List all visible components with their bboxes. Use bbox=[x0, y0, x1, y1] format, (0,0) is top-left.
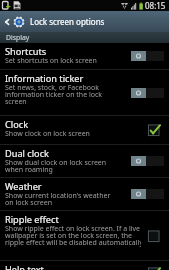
button[interactable]: Unchecked bbox=[144, 229, 164, 243]
staticText: Help text bbox=[5, 263, 44, 270]
button[interactable]: Toggle bbox=[131, 51, 164, 61]
button[interactable]: Navigate up bbox=[0, 11, 13, 32]
button[interactable]: Toggle bbox=[131, 88, 164, 98]
staticText: Dual clock bbox=[5, 147, 49, 160]
button[interactable]: Help text bbox=[0, 261, 169, 270]
staticText: Shortcuts bbox=[5, 45, 47, 58]
staticText: Lock screen options bbox=[30, 16, 105, 27]
button[interactable]: Ripple effect bbox=[0, 211, 169, 260]
button[interactable]: Information ticker bbox=[0, 70, 169, 115]
button[interactable]: Weather bbox=[0, 178, 169, 210]
staticText: Set news, stock, or Facebook information… bbox=[5, 83, 103, 106]
staticText: Show ripple effect on lock screen. If a … bbox=[5, 224, 141, 247]
button[interactable]: Toggle bbox=[131, 189, 164, 199]
staticText: Information ticker bbox=[5, 72, 84, 85]
button[interactable]: Dual clock bbox=[0, 145, 169, 177]
button[interactable]: Toggle bbox=[131, 156, 164, 166]
staticText: Clock bbox=[5, 118, 29, 131]
staticText: 08:15 bbox=[145, 0, 166, 11]
button[interactable]: Checked bbox=[144, 267, 164, 270]
staticText: Show current location's weather on lock … bbox=[5, 191, 111, 207]
staticText: Display bbox=[6, 33, 30, 42]
staticText: Show dual clock on lock screen when roam… bbox=[5, 158, 107, 174]
button[interactable]: Checked bbox=[144, 123, 164, 137]
button[interactable]: Clock bbox=[0, 116, 169, 144]
staticText: Show clock on lock screen bbox=[5, 129, 90, 139]
button[interactable]: Shortcuts bbox=[0, 43, 169, 69]
staticText: Set shortcuts on lock screen bbox=[5, 56, 97, 66]
staticText: Ripple effect bbox=[5, 213, 59, 226]
staticText: Weather bbox=[5, 180, 42, 193]
